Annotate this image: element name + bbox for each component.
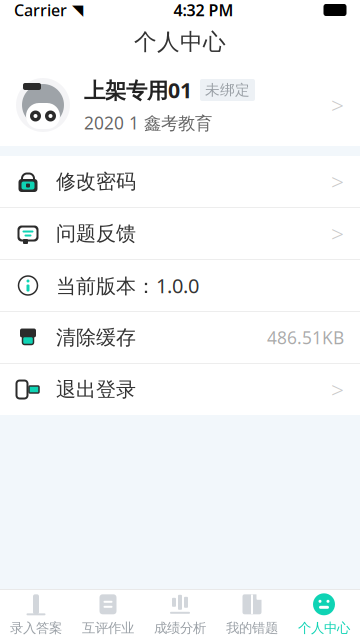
staticText: > <box>331 166 344 196</box>
staticText: 互评作业 <box>82 620 134 636</box>
staticText: 个人中心 <box>134 28 226 56</box>
staticText: > <box>331 218 344 248</box>
button[interactable]: 个人中心 <box>288 590 360 639</box>
button[interactable]: 我的错题 <box>216 590 288 639</box>
button[interactable]: 上架专用01 <box>0 64 360 146</box>
button[interactable]: 问题反馈 <box>0 208 360 260</box>
staticText: 录入答案 <box>10 620 62 636</box>
staticText: 4:32 PM <box>173 0 233 21</box>
staticText: 2020 1 鑫考教育 <box>84 111 212 134</box>
staticText: > <box>331 374 344 404</box>
button[interactable]: 退出登录 <box>0 364 360 415</box>
button[interactable]: 录入答案 <box>0 590 72 639</box>
staticText: > <box>331 90 344 120</box>
staticText: 未绑定 <box>205 81 250 99</box>
staticText: 成绩分析 <box>154 620 206 636</box>
button[interactable]: 修改密码 <box>0 156 360 208</box>
staticText: 当前版本：1.0.0 <box>56 272 199 299</box>
staticText: 486.51KB <box>267 326 344 349</box>
staticText: 个人中心 <box>298 620 350 636</box>
button[interactable]: 成绩分析 <box>144 590 216 639</box>
staticText: 修改密码 <box>56 169 136 194</box>
staticText: Carrier <box>14 0 67 21</box>
button[interactable]: 互评作业 <box>72 590 144 639</box>
staticText: ◥ <box>72 2 83 18</box>
button[interactable]: 当前版本：1.0.0 <box>0 260 360 312</box>
staticText: 我的错题 <box>226 620 278 636</box>
staticText: 退出登录 <box>56 377 136 402</box>
staticText: 清除缓存 <box>56 325 136 350</box>
staticText: 问题反馈 <box>56 221 136 246</box>
button[interactable]: 清除缓存 <box>0 312 360 364</box>
staticText: 上架专用01 <box>84 76 192 104</box>
